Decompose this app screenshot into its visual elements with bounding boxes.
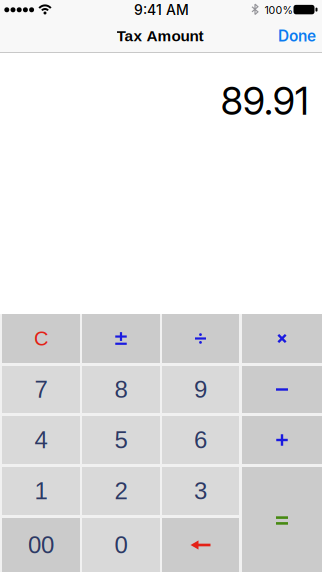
button[interactable]: 9 [162,366,239,413]
staticText: Tax Amount [116,27,203,44]
button[interactable] [242,314,322,363]
button[interactable]: 1 [2,467,80,515]
button[interactable]: 2 [82,467,160,515]
button[interactable] [162,518,239,572]
staticText: 6 [194,427,207,453]
button[interactable]: 7 [2,366,80,413]
staticText: C [34,327,48,350]
button[interactable]: 8 [82,366,160,413]
button[interactable] [162,314,239,363]
button[interactable]: 0 [82,518,160,572]
staticText: 1 [34,478,47,504]
staticText: 5 [114,427,127,453]
staticText: 00 [28,532,54,558]
staticText: 7 [34,376,47,403]
button[interactable] [82,314,160,363]
staticText: 2 [114,478,127,504]
button[interactable]: 00 [2,518,80,572]
button[interactable]: 3 [162,467,239,515]
staticText: 9:41 AM [134,1,189,18]
button[interactable] [242,416,322,464]
button[interactable]: 5 [82,416,160,464]
button[interactable] [242,366,322,413]
staticText: 9 [194,376,207,403]
button[interactable]: C [2,314,80,363]
staticText: 8 [114,376,127,403]
button[interactable]: 6 [162,416,239,464]
staticText: 3 [194,478,207,504]
button[interactable]: 4 [2,416,80,464]
staticText: 4 [34,427,47,453]
staticText: Done [278,27,316,45]
button[interactable]: Done [270,20,322,52]
staticText: 100% [264,3,292,16]
staticText: 89.91 [221,78,309,124]
staticText: 0 [114,532,127,558]
button[interactable] [242,467,322,572]
